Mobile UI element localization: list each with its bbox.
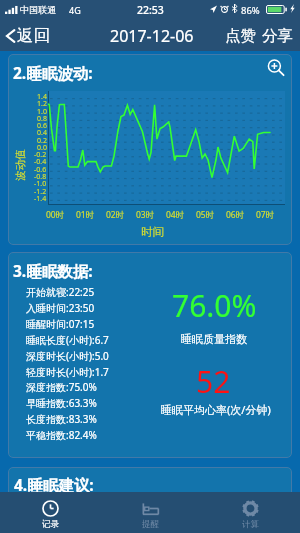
staticText: 0.4 [37, 128, 47, 138]
staticText: 睡眠质量指数 [181, 332, 247, 346]
button[interactable]: 分享 [259, 20, 296, 51]
staticText: 0.2 [37, 136, 47, 146]
staticText: -0.4 [34, 157, 47, 167]
staticText: 长度指数:83.3% [26, 412, 97, 426]
staticText: 时间 [141, 225, 164, 239]
staticText: 02时 [106, 209, 125, 221]
staticText: 睡醒时间:07:15 [26, 317, 95, 331]
staticText: 1.4 [37, 92, 47, 102]
button[interactable]: 记录 [0, 492, 100, 533]
staticText: 06时 [226, 209, 245, 221]
staticText: 睡眠长度(小时):6.7 [26, 333, 109, 347]
staticText: 平稳指数:82.4% [26, 428, 97, 442]
staticText: 分享 [262, 26, 293, 46]
staticText: 0.8 [37, 114, 47, 124]
staticText: 深度时长(小时):5.0 [26, 349, 109, 363]
staticText: 52 [196, 361, 231, 402]
staticText: 86% [241, 4, 260, 17]
button[interactable]: 返回 [0, 20, 58, 51]
staticText: 05时 [196, 209, 215, 221]
staticText: 中国联通 [20, 4, 56, 15]
staticText: 22:53 [137, 3, 164, 17]
button[interactable]: 点赞 [222, 20, 259, 51]
staticText: -0.8 [34, 172, 47, 182]
staticText: 2.睡眠波动: [13, 62, 93, 83]
staticText: 01时 [76, 209, 95, 221]
staticText: 点赞 [225, 26, 256, 46]
staticText: 轻度时长(小时):1.7 [26, 365, 109, 379]
staticText: 睡眠平均心率(次/分钟) [161, 402, 271, 417]
staticText: 4.睡眠建议: [14, 474, 94, 495]
staticText: 1.0 [37, 107, 47, 117]
staticText: 入睡时间:23:50 [26, 301, 95, 315]
button[interactable]: 提醒 [100, 492, 200, 533]
staticText: 记录 [42, 519, 59, 530]
staticText: 提醒 [142, 519, 159, 530]
staticText: 4G [69, 4, 81, 16]
staticText: 76.0% [172, 285, 257, 326]
staticText: 返回 [17, 25, 50, 46]
staticText: 3.睡眠数据: [13, 260, 93, 281]
staticText: -0.2 [34, 150, 47, 160]
button[interactable]: 计算 [200, 492, 300, 533]
staticText: 深度指数:75.0% [26, 380, 97, 394]
staticText: 0.6 [37, 121, 47, 131]
staticText: 07时 [256, 209, 275, 221]
staticText: 03时 [136, 209, 155, 221]
staticText: -1.2 [34, 187, 47, 197]
staticText: 波动值 [14, 149, 27, 181]
staticText: 04时 [166, 209, 185, 221]
staticText: -1.0 [34, 179, 47, 189]
staticText: 早睡指数:63.3% [26, 396, 97, 410]
staticText: 计算 [242, 519, 259, 530]
staticText: -0.6 [34, 165, 47, 175]
staticText: 00时 [46, 209, 65, 221]
staticText: 0.0 [37, 143, 47, 153]
staticText: 2017-12-06 [110, 25, 194, 47]
button[interactable]: Zoom in [266, 58, 286, 78]
staticText: 开始就寝:22:25 [26, 285, 95, 299]
staticText: -1.4 [34, 194, 47, 204]
staticText: 1.2 [37, 99, 47, 109]
